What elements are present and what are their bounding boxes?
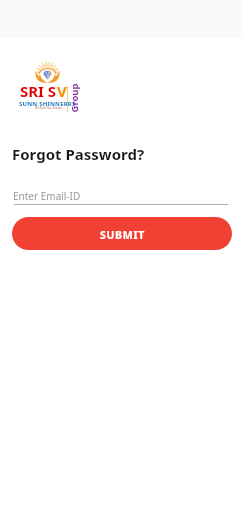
staticText: Group [67, 82, 80, 112]
button[interactable]: Enter Email-ID [12, 182, 230, 205]
staticText: SUBMIT [100, 228, 145, 242]
staticText: Forgot Password? [12, 144, 145, 164]
staticText: Enter Email-ID [13, 189, 81, 203]
staticText: V [57, 81, 67, 101]
staticText: SUNN SHINNERRS [19, 100, 76, 108]
staticText: We Build Your Dreams [35, 106, 63, 110]
button[interactable]: SUBMIT [12, 217, 232, 250]
staticText: SRI S [20, 81, 57, 101]
